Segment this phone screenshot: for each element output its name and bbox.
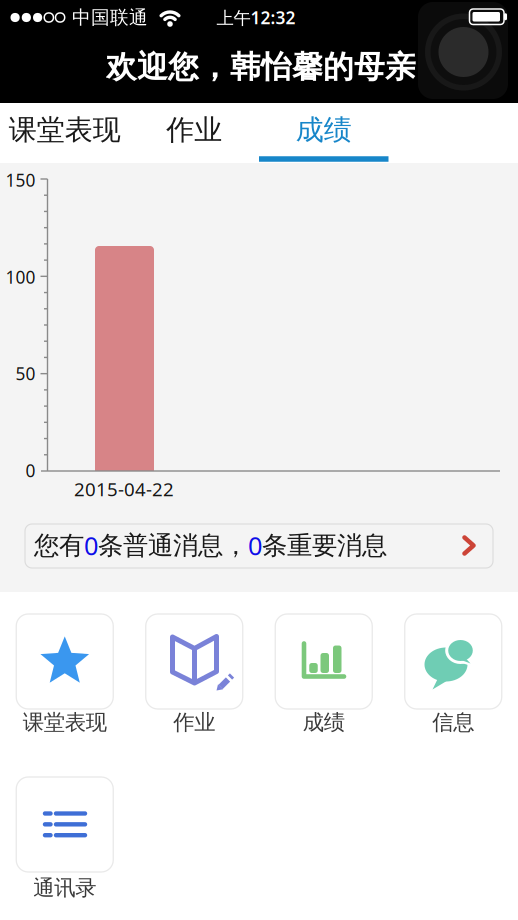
staticText: 100 [5,265,35,288]
staticText: 课堂表现 [23,709,107,736]
staticText: 50 [15,362,35,385]
staticText: 课堂表现 [9,113,121,147]
staticText: 条普通消息， [98,530,248,561]
staticText: 作业 [166,113,222,147]
staticText: 条重要消息 [262,530,387,561]
staticText: 上午12:32 [216,6,295,29]
staticText: 成绩 [296,113,352,147]
staticText: 0 [84,529,98,562]
staticText: 通讯录 [33,875,96,901]
staticText: 成绩 [303,709,345,736]
staticText: 150 [5,168,35,191]
staticText: 0 [25,459,35,482]
staticText: 中国联通 [72,6,148,29]
staticText: 信息 [432,709,474,736]
staticText: 欢迎您，韩怡馨的母亲 [106,48,416,86]
staticText: 作业 [173,709,215,736]
staticText: 0 [248,529,262,562]
staticText: 2015-04-22 [74,477,174,501]
staticText: 您有 [34,530,84,561]
